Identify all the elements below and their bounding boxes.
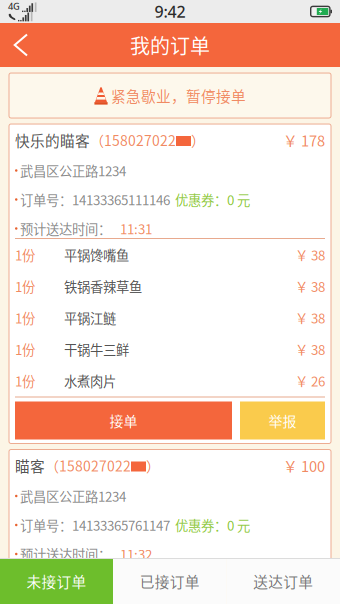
staticText: 铁锅香辣草鱼: [64, 277, 142, 296]
staticText: ￥ 38: [295, 308, 325, 327]
staticText: ￥ 38: [295, 277, 325, 296]
staticText: 接单: [109, 410, 137, 431]
staticText: 1份: [15, 340, 35, 359]
staticText: 送达订单: [253, 570, 313, 592]
staticText: ￥ 100: [283, 455, 325, 476]
staticText: 武昌区公正路1234: [20, 161, 126, 180]
staticText: 1份: [15, 571, 35, 590]
staticText: 紧急歇业，暂停接单: [111, 85, 246, 106]
staticText: 快乐的瞄客: [15, 129, 90, 151]
staticText: （158027022: [45, 455, 131, 476]
staticText: 干锅牛三鲜: [64, 340, 129, 359]
staticText: 优惠券：0 元: [175, 515, 250, 535]
staticText: ）: [191, 130, 205, 150]
staticText: 平锅江鲢: [64, 308, 116, 327]
staticText: 我的订单: [130, 30, 210, 59]
button[interactable]: 举报: [240, 401, 325, 439]
staticText: ￥ 38: [295, 571, 325, 590]
staticText: 预计送达时间：: [20, 544, 120, 564]
staticText: 平锅馋嘴鱼: [64, 571, 129, 590]
button[interactable]: 接单: [15, 401, 232, 439]
staticText: 优惠券：0 元: [175, 190, 250, 209]
button[interactable]: 送达订单: [226, 558, 340, 604]
staticText: 订单号：14133365761147: [20, 515, 170, 535]
staticText: 4G: [8, 0, 20, 12]
staticText: （158027022: [90, 130, 176, 150]
staticText: 1份: [15, 277, 35, 296]
staticText: 9:42: [154, 1, 185, 22]
staticText: ￥ 178: [283, 129, 325, 151]
staticText: 11:32: [120, 544, 152, 564]
button[interactable]: 已接订单: [113, 558, 226, 604]
staticText: 1份: [15, 308, 35, 327]
staticText: ￥ 38: [295, 340, 325, 359]
staticText: 瞄客: [15, 455, 45, 476]
staticText: ￥ 38: [295, 245, 325, 264]
staticText: 水煮肉片: [64, 371, 116, 390]
staticText: 预计送达时间：: [20, 219, 120, 238]
staticText: 举报: [268, 410, 296, 431]
staticText: 1份: [15, 245, 35, 264]
staticText: 平锅馋嘴鱼: [64, 245, 129, 264]
staticText: 未接订单: [26, 570, 86, 592]
button[interactable]: 接单: [15, 601, 232, 604]
staticText: 1份: [15, 371, 35, 390]
staticText: 已接订单: [140, 570, 200, 592]
staticText: ￥ 26: [295, 371, 325, 390]
staticText: 武昌区公正路1234: [20, 486, 126, 506]
staticText: 订单号：14133365111146: [20, 190, 170, 209]
button[interactable]: Back: [0, 23, 42, 67]
staticText: 11:31: [120, 219, 152, 238]
button[interactable]: 未接订单: [0, 558, 113, 604]
staticText: ）: [146, 455, 160, 476]
